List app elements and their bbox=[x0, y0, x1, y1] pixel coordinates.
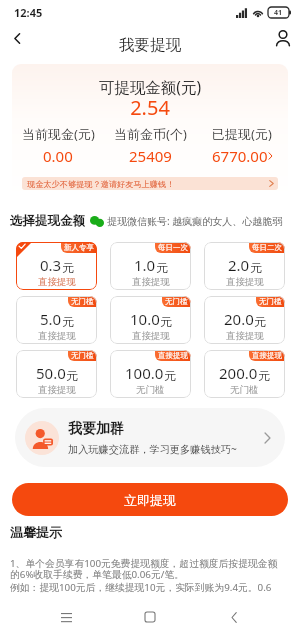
staticText: 已提现(元) bbox=[212, 125, 272, 143]
button[interactable]: 100.0 bbox=[110, 350, 191, 398]
staticText: 2.0 bbox=[228, 255, 250, 275]
staticText: 元 bbox=[160, 314, 172, 329]
button[interactable]: 我要加群 bbox=[15, 408, 285, 467]
staticText: 1.0 bbox=[134, 255, 156, 275]
staticText: 例如：提现100元后，继续提现10元，实际到账为9.4元。0.6 bbox=[10, 581, 272, 594]
button[interactable]: Back bbox=[0, 21, 34, 55]
staticText: 每日一次 bbox=[158, 243, 188, 252]
staticText: 我要加群 bbox=[68, 420, 124, 438]
button[interactable]: Back bbox=[216, 601, 252, 633]
staticText: 元 bbox=[164, 368, 176, 383]
staticText: 我要提现 bbox=[119, 35, 181, 55]
staticText: 25409 bbox=[129, 146, 172, 166]
staticText: 0.00 bbox=[43, 146, 73, 166]
button[interactable]: Home bbox=[132, 601, 168, 633]
staticText: 直接提现 bbox=[132, 330, 170, 342]
staticText: 直接提现 bbox=[38, 384, 76, 396]
staticText: 元 bbox=[254, 314, 266, 329]
staticText: 直接提现 bbox=[38, 330, 76, 342]
staticText: 元 bbox=[62, 260, 74, 275]
button[interactable]: 10.0 bbox=[110, 296, 191, 344]
staticText: 可提现金额(元) bbox=[12, 76, 288, 97]
button[interactable]: 200.0 bbox=[204, 350, 285, 398]
staticText: 温馨提示 bbox=[10, 524, 62, 540]
staticText: 现金太少不够提现？邀请好友马上赚钱！ bbox=[27, 179, 269, 189]
staticText: 无门槛 bbox=[71, 297, 94, 306]
staticText: 直接提现 bbox=[252, 351, 282, 360]
button[interactable]: 1.0 bbox=[110, 242, 191, 290]
staticText: 元 bbox=[66, 368, 78, 383]
staticText: 50.0 bbox=[36, 363, 66, 383]
staticText: 200.0 bbox=[219, 363, 258, 383]
staticText: 提现微信账号: 越疯癫的女人、心越脆弱 bbox=[107, 214, 283, 228]
staticText: 新人专享 bbox=[64, 243, 94, 252]
staticText: 直接提现 bbox=[38, 276, 76, 288]
staticText: 元 bbox=[156, 260, 168, 275]
staticText: 无门槛 bbox=[259, 297, 282, 306]
staticText: 0.3 bbox=[40, 255, 62, 275]
staticText: 无门槛 bbox=[230, 384, 259, 396]
staticText: 6770.00 bbox=[212, 146, 268, 166]
staticText: 直接提现 bbox=[226, 330, 264, 342]
staticText: 无门槛 bbox=[136, 384, 165, 396]
staticText: 的6%收取手续费，单笔最低0.06元/笔。 bbox=[10, 568, 184, 581]
button[interactable]: 2.0 bbox=[204, 242, 285, 290]
staticText: 无门槛 bbox=[71, 351, 94, 360]
staticText: 直接提现 bbox=[132, 276, 170, 288]
button[interactable]: 现金太少不够提现？邀请好友马上赚钱！ bbox=[22, 177, 278, 190]
staticText: 直接提现 bbox=[158, 351, 188, 360]
button[interactable]: 50.0 bbox=[16, 350, 97, 398]
staticText: 选择提现金额 bbox=[10, 213, 85, 229]
staticText: 立即提现 bbox=[124, 492, 176, 508]
button[interactable]: 20.0 bbox=[204, 296, 285, 344]
staticText: 元 bbox=[250, 260, 262, 275]
button[interactable]: 5.0 bbox=[16, 296, 97, 344]
button[interactable]: Recents bbox=[48, 601, 84, 633]
staticText: 10.0 bbox=[130, 309, 160, 329]
button[interactable]: Profile bbox=[266, 21, 300, 55]
staticText: 20.0 bbox=[224, 309, 254, 329]
staticText: 41 bbox=[274, 8, 283, 18]
staticText: 12:45 bbox=[14, 5, 43, 20]
staticText: 1、单个会员享有100元免费提现额度，超过额度后按提现金额 bbox=[10, 557, 278, 570]
staticText: 2.54 bbox=[12, 94, 288, 121]
staticText: 直接提现 bbox=[226, 276, 264, 288]
staticText: 当前现金(元) bbox=[22, 125, 95, 143]
staticText: 每日二次 bbox=[252, 243, 282, 252]
staticText: 元 bbox=[62, 314, 74, 329]
button[interactable]: 0.3 bbox=[16, 242, 97, 290]
staticText: 当前金币(个) bbox=[114, 125, 187, 143]
staticText: 100.0 bbox=[125, 363, 164, 383]
staticText: 元 bbox=[258, 368, 270, 383]
button[interactable]: 立即提现 bbox=[12, 483, 288, 516]
staticText: 5.0 bbox=[40, 309, 62, 329]
staticText: 无门槛 bbox=[165, 297, 188, 306]
staticText: 加入玩赚交流群，学习更多赚钱技巧~ bbox=[68, 442, 237, 456]
